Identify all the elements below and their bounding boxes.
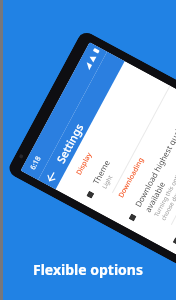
staticText: Download highest quality available xyxy=(132,103,176,214)
staticText: Display xyxy=(74,150,95,177)
staticText: 6:18 xyxy=(28,154,43,172)
staticText: Downloading xyxy=(116,155,146,200)
other: Back xyxy=(44,169,59,184)
staticText: Light xyxy=(100,173,115,190)
button[interactable]: Change download location xyxy=(160,117,176,260)
button[interactable]: Theme xyxy=(74,71,170,214)
staticText: Settings xyxy=(53,121,86,166)
staticText: Turning this option off will allow you t… xyxy=(152,114,176,222)
staticText: Theme xyxy=(90,158,112,186)
staticText: Flexible options xyxy=(33,260,143,279)
button[interactable]: Download highest quality available xyxy=(116,94,176,246)
